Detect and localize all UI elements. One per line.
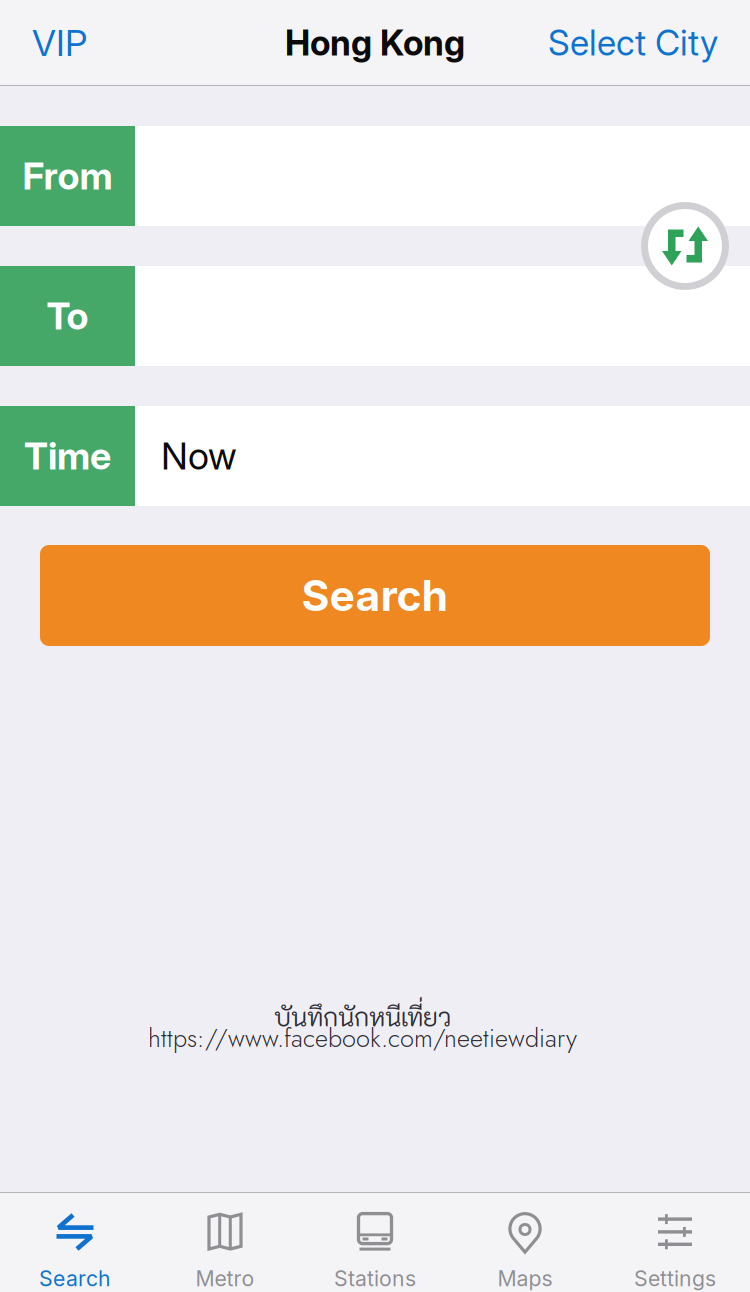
staticText: Settings <box>634 1266 716 1291</box>
button[interactable]: From <box>0 126 750 226</box>
button[interactable]: Stations <box>300 1192 450 1292</box>
button[interactable]: Time <box>0 406 750 506</box>
button[interactable]: VIP <box>0 0 119 86</box>
staticText: Now <box>161 434 237 478</box>
button[interactable]: Maps <box>450 1192 600 1292</box>
button[interactable]: Select City <box>516 0 750 86</box>
staticText: To <box>46 294 88 338</box>
staticText: Search <box>301 570 448 621</box>
staticText: Maps <box>497 1266 552 1291</box>
staticText: Stations <box>334 1266 416 1291</box>
button[interactable]: Swap from and to <box>641 202 729 290</box>
button[interactable]: Settings <box>600 1192 750 1292</box>
staticText: บันทึกนักหนีเที่ยว <box>274 1000 451 1033</box>
button[interactable]: To <box>0 266 750 366</box>
staticText: Hong Kong <box>285 23 465 63</box>
staticText: Time <box>24 434 111 478</box>
button[interactable]: Search <box>40 545 710 646</box>
staticText: Search <box>39 1266 111 1291</box>
staticText: https://www.facebook.com/neetiewdiary <box>148 1020 577 1056</box>
staticText: VIP <box>32 22 87 64</box>
button[interactable]: Search <box>0 1192 150 1292</box>
staticText: Metro <box>195 1266 254 1291</box>
staticText: From <box>22 154 112 198</box>
staticText: Select City <box>548 23 718 63</box>
button[interactable]: Metro <box>150 1192 300 1292</box>
